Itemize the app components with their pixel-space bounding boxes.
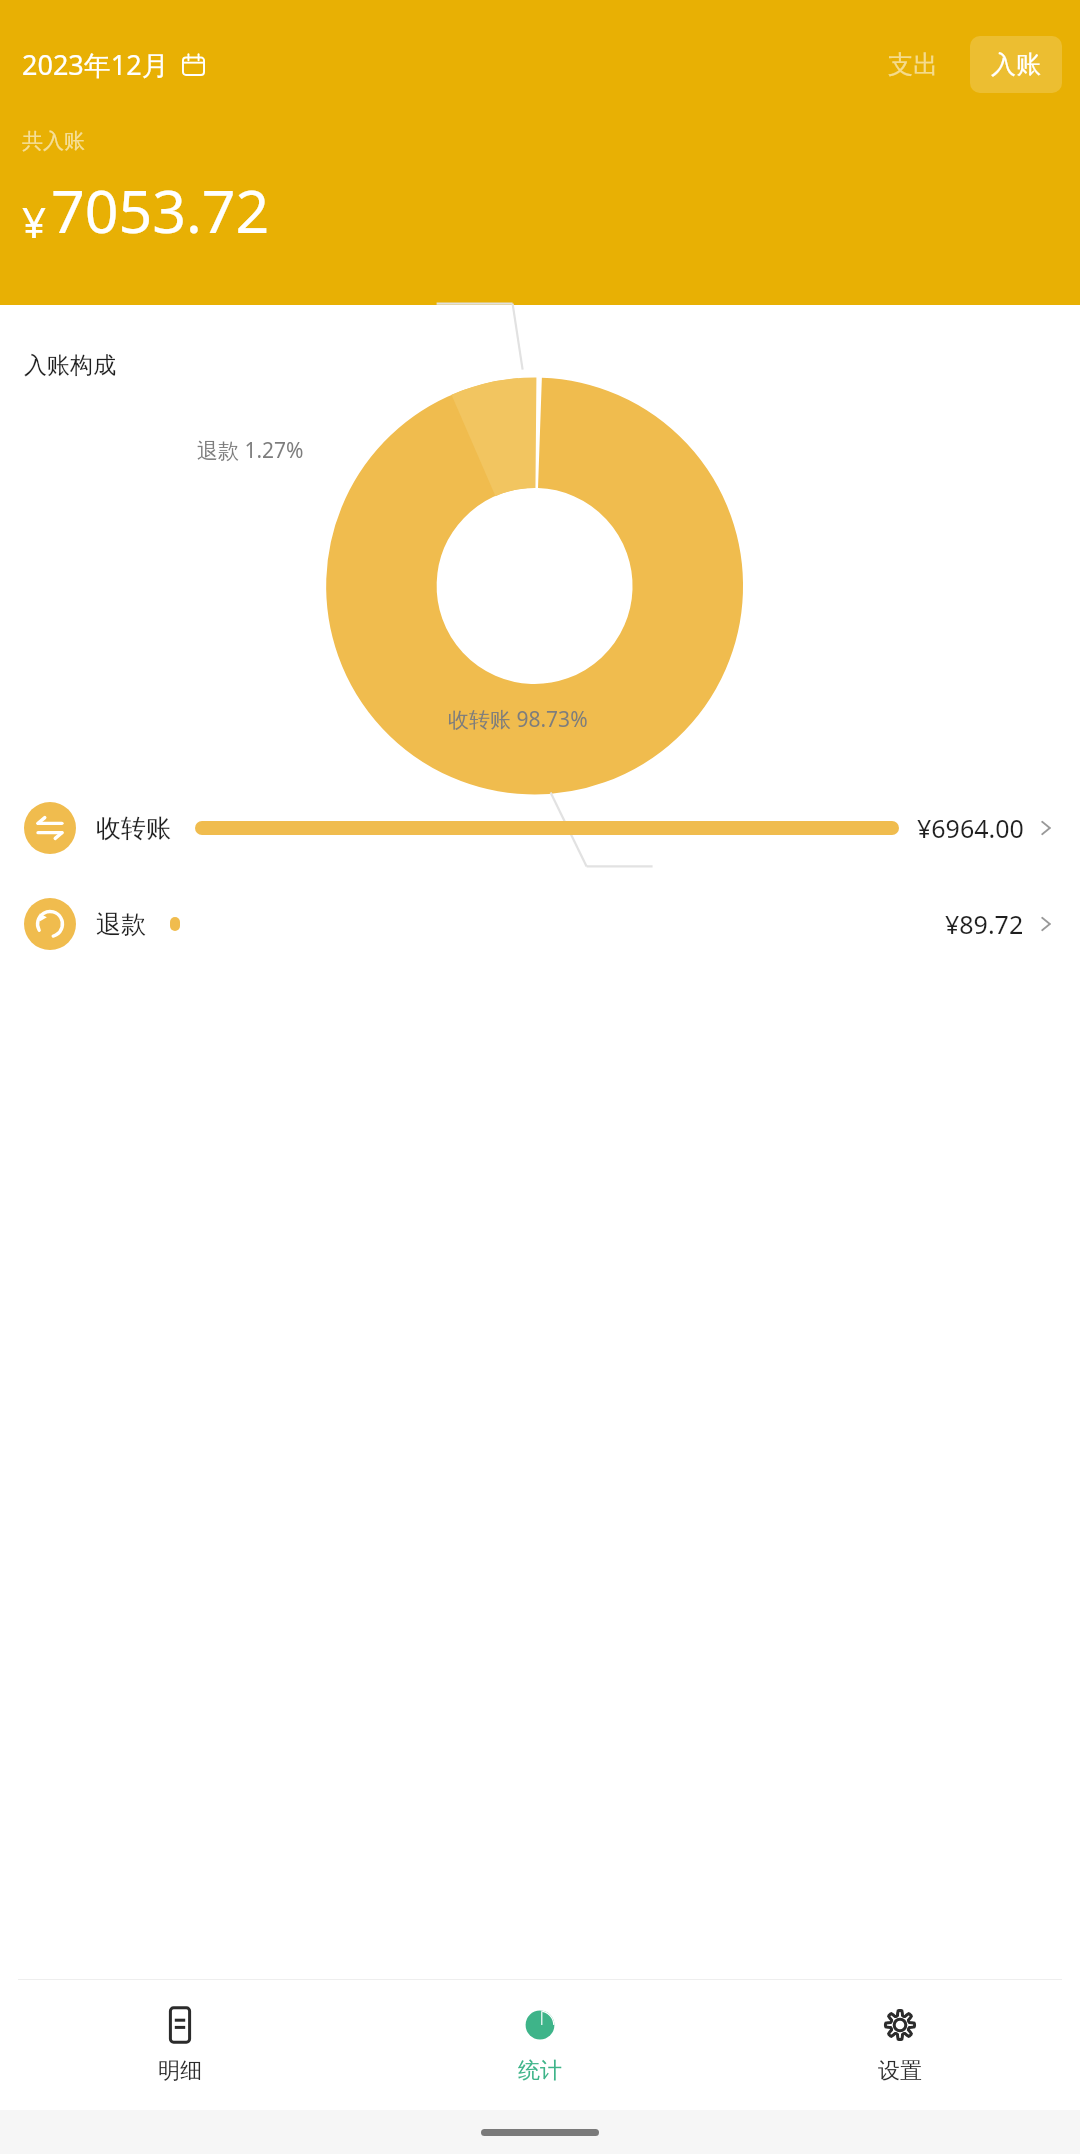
staticText: 退款 1.27% (197, 436, 304, 465)
staticText: 支出 (888, 49, 938, 80)
staticText: 入账构成 (24, 351, 116, 380)
button[interactable]: 2023年12月 (22, 40, 205, 89)
staticText: 共入账 (22, 128, 85, 154)
staticText: 明细 (158, 2057, 202, 2085)
button[interactable]: 支出 (868, 36, 958, 93)
button[interactable]: 入账 (970, 36, 1062, 93)
button[interactable]: 统计 (360, 1980, 720, 2110)
staticText: ¥ (22, 193, 47, 250)
staticText: 收转账 (96, 813, 171, 844)
staticText: 2023年12月 (22, 46, 169, 83)
staticText: 退款 (96, 909, 146, 940)
staticText: 入账 (991, 49, 1041, 80)
button[interactable]: 收转账 (0, 780, 1080, 876)
staticText: 设置 (878, 2057, 922, 2085)
button[interactable]: 明细 (0, 1980, 360, 2110)
button[interactable]: 设置 (720, 1980, 1080, 2110)
staticText: 7053.72 (51, 170, 270, 250)
staticText: 统计 (518, 2057, 562, 2085)
staticText: ¥6964.00 (917, 811, 1024, 845)
staticText: 收转账 98.73% (448, 705, 588, 734)
other: Pick month (182, 53, 205, 76)
button[interactable]: 退款 (0, 876, 1080, 972)
staticText: ¥89.72 (945, 907, 1024, 941)
